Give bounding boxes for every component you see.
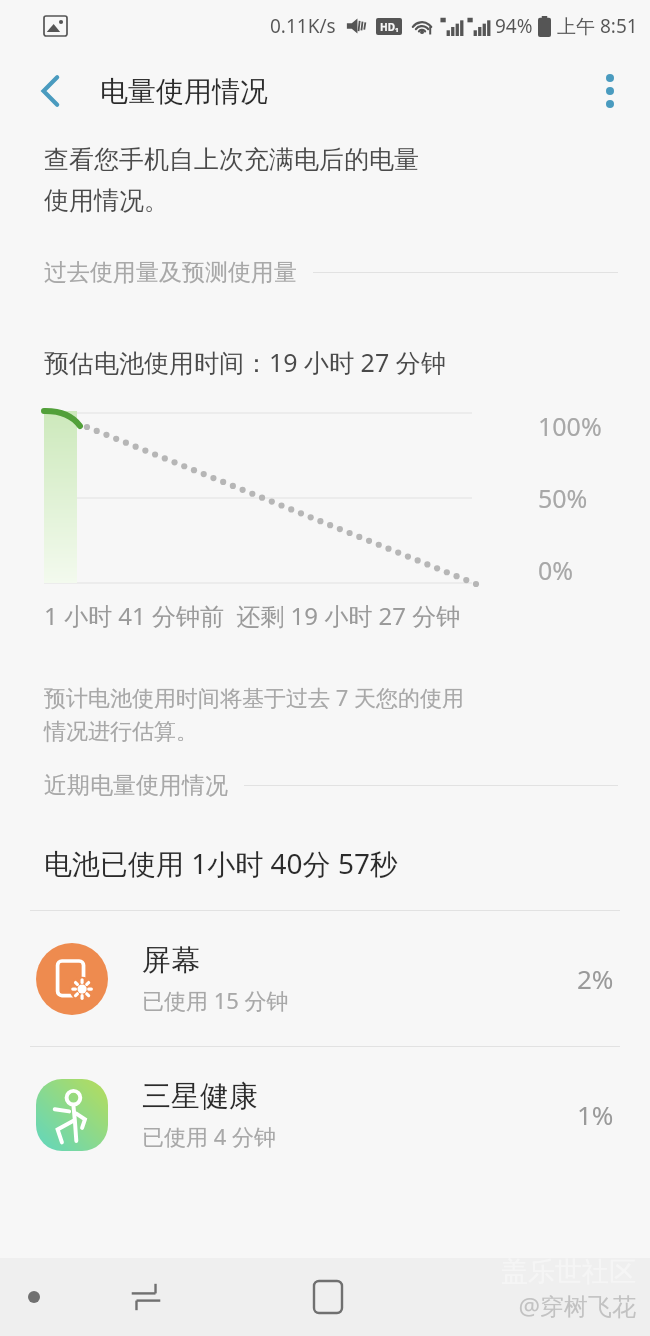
staticText: 50%	[538, 481, 588, 515]
button[interactable]: Back	[118, 1269, 174, 1325]
staticText: 1 小时 41 分钟前 还剩 19 小时 27 分钟	[44, 599, 461, 632]
staticText: @穿树飞花	[518, 1289, 636, 1322]
staticText: 0%	[538, 553, 574, 587]
staticText: 100%	[538, 409, 602, 443]
button[interactable]: More options	[584, 65, 636, 117]
button[interactable]: 屏幕	[0, 911, 650, 1046]
staticText: 近期电量使用情况	[44, 771, 228, 800]
staticText: 预计电池使用时间将基于过去 7 天您的使用 情况进行估算。	[44, 682, 465, 745]
staticText: 94%	[495, 13, 533, 39]
staticText: 0.11K/s	[270, 13, 336, 39]
staticText: 上午 8:51	[557, 13, 638, 39]
staticText: 电量使用情况	[100, 74, 268, 109]
button[interactable]: Back	[26, 66, 76, 116]
staticText: 预估电池使用时间：19 小时 27 分钟	[44, 345, 446, 379]
staticText: 屏幕	[142, 942, 200, 979]
staticText: 已使用 4 分钟	[142, 1121, 277, 1151]
staticText: 1%	[577, 1097, 614, 1132]
button[interactable]: Recent apps	[300, 1269, 356, 1325]
staticText: 电池已使用 1小时 40分 57秒	[44, 844, 398, 882]
staticText: HD₁	[380, 20, 399, 34]
staticText: 2%	[577, 961, 614, 996]
staticText: 三星健康	[142, 1078, 258, 1115]
staticText: 已使用 15 分钟	[142, 985, 289, 1015]
button[interactable]: Menu	[8, 1271, 60, 1323]
staticText: 过去使用量及预测使用量	[44, 258, 297, 287]
button[interactable]: 三星健康	[0, 1047, 650, 1182]
staticText: 查看您手机自上次充满电后的电量 使用情况。	[44, 144, 419, 216]
